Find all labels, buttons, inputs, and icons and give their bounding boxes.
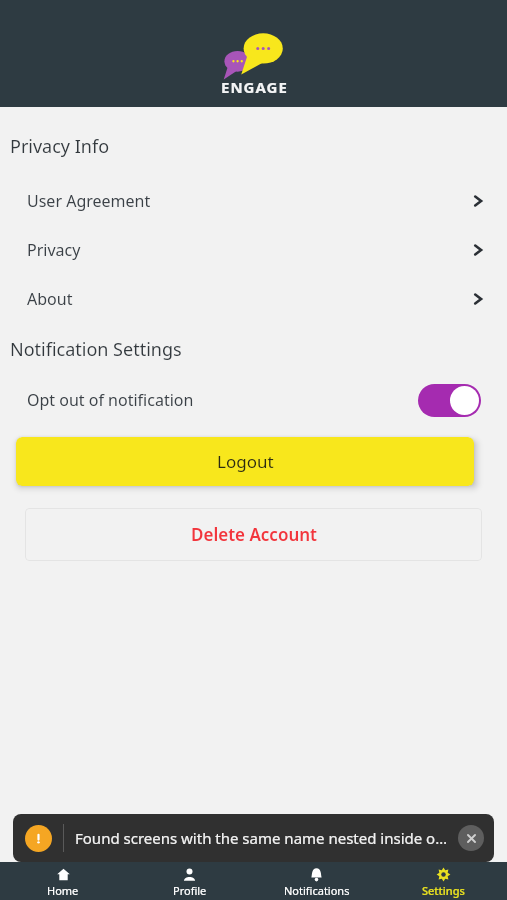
staticText: Privacy	[27, 239, 471, 261]
staticText: Delete Account	[191, 523, 317, 546]
staticText: ENGAGE	[221, 77, 288, 97]
staticText: User Agreement	[27, 190, 471, 212]
button[interactable]: Logout	[16, 437, 474, 486]
button[interactable]: Opt out of notification toggle	[418, 384, 481, 417]
button[interactable]: Settings	[380, 862, 507, 900]
staticText: About	[27, 288, 471, 310]
staticText: Profile	[173, 883, 207, 898]
button[interactable]: Privacy	[0, 225, 507, 274]
staticText: Opt out of notification	[27, 389, 418, 411]
button[interactable]: About	[0, 274, 507, 323]
button[interactable]: Home	[0, 862, 126, 900]
staticText: Notifications	[284, 883, 350, 898]
button[interactable]: Profile	[126, 862, 253, 900]
staticText: Privacy Info	[10, 134, 110, 159]
staticText: Found screens with the same name nested …	[75, 828, 450, 848]
staticText: Logout	[217, 450, 274, 473]
staticText: Notification Settings	[10, 337, 182, 362]
button[interactable]: User Agreement	[0, 176, 507, 225]
button[interactable]: Delete Account	[25, 508, 482, 561]
button[interactable]: Dismiss	[458, 825, 484, 851]
staticText: Home	[47, 883, 79, 898]
staticText: Settings	[422, 883, 465, 898]
button[interactable]: Notifications	[253, 862, 380, 900]
